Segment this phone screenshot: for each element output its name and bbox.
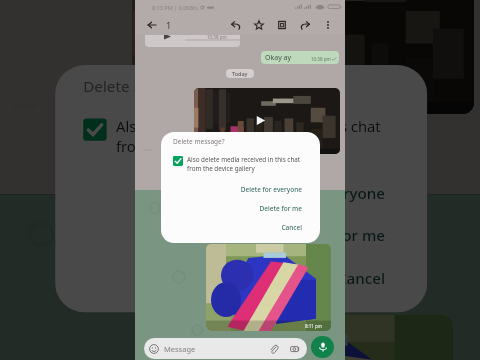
button[interactable]: Delete for me bbox=[83, 214, 385, 257]
staticText: Cancel bbox=[281, 223, 302, 232]
button[interactable]: Delete for everyone bbox=[173, 180, 302, 199]
staticText: 10:38 pm bbox=[311, 56, 331, 62]
button[interactable]: More options bbox=[316, 14, 339, 35]
button[interactable]: Star bbox=[247, 14, 270, 35]
staticText: 1 bbox=[166, 19, 172, 31]
staticText: Also delete media received in this chat … bbox=[116, 116, 385, 156]
button[interactable]: Delete for everyone bbox=[83, 172, 385, 214]
button[interactable]: Cancel bbox=[83, 257, 385, 299]
staticText: Today bbox=[232, 70, 248, 77]
button[interactable]: Photo message bbox=[160, 315, 453, 360]
staticText: 10:38 pm bbox=[207, 34, 227, 40]
staticText: 8:13 PM | 0.0KB/s bbox=[152, 4, 198, 11]
button[interactable]: Delete for me bbox=[173, 199, 302, 218]
button[interactable]: Photo message bbox=[206, 244, 331, 331]
button[interactable]: Okay ay bbox=[261, 51, 339, 64]
staticText: Delete for everyone bbox=[240, 185, 302, 194]
button[interactable]: Voice message bbox=[311, 336, 334, 358]
button[interactable]: Message bbox=[144, 338, 307, 359]
staticText: 8:11 pm bbox=[305, 323, 323, 329]
staticText: Delete for me bbox=[284, 225, 385, 246]
button[interactable]: Also delete media checkbox bbox=[83, 118, 107, 141]
button[interactable]: Also delete media checkbox bbox=[173, 156, 183, 166]
staticText: Delete for everyone bbox=[240, 183, 385, 203]
button[interactable]: Video message bbox=[194, 88, 340, 154]
button[interactable]: Reply bbox=[224, 14, 247, 35]
staticText: Cancel bbox=[336, 268, 385, 288]
button[interactable]: Back bbox=[143, 16, 160, 33]
button[interactable]: Delete bbox=[270, 14, 293, 35]
staticText: Also delete media received in this chat … bbox=[187, 155, 302, 173]
button[interactable]: 33 secs bbox=[145, 28, 240, 47]
staticText: Delete message? bbox=[173, 137, 225, 146]
staticText: Okay ay bbox=[265, 53, 292, 63]
button[interactable]: Forward bbox=[293, 14, 316, 35]
button[interactable]: Cancel bbox=[173, 218, 302, 237]
button[interactable]: Video message bbox=[132, 0, 474, 114]
staticText: Delete for me bbox=[259, 204, 302, 213]
staticText: Message bbox=[164, 344, 196, 354]
staticText: 33 secs bbox=[171, 29, 189, 36]
staticText: Delete message? bbox=[83, 76, 205, 96]
